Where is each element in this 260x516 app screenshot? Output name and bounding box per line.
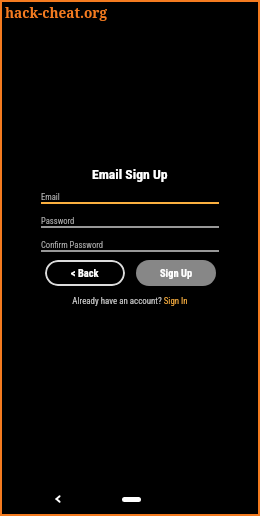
staticText: Password	[41, 216, 75, 226]
staticText: Already have an account? Sign In	[72, 296, 188, 306]
button[interactable]: Sign Up	[136, 260, 216, 286]
button[interactable]: Back	[40, 487, 76, 511]
button[interactable]: < Back	[45, 260, 125, 286]
button[interactable]: Home	[112, 487, 150, 511]
staticText: Sign Up	[160, 267, 193, 279]
staticText: Email Sign Up	[92, 166, 168, 182]
button[interactable]: Already have an account? Sign In	[41, 296, 219, 306]
staticText: < Back	[71, 267, 99, 279]
staticText: Email	[41, 192, 60, 202]
staticText: Confirm Password	[41, 240, 103, 250]
staticText: hack-cheat.org	[5, 3, 107, 22]
